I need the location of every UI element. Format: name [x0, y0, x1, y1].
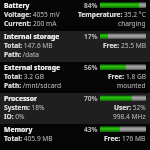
staticText: mounted: [117, 81, 146, 90]
staticText: 43%: [84, 125, 98, 134]
staticText: Battery: [4, 1, 30, 10]
staticText: Path: /data: [4, 50, 40, 59]
staticText: Memory: [4, 125, 33, 134]
staticText: 56%: [84, 63, 98, 72]
button[interactable]: Internal storage: [0, 31, 150, 62]
staticText: Processor: [4, 94, 38, 103]
staticText: External storage: [4, 63, 60, 72]
staticText: Current: 200 mA: [4, 19, 57, 28]
staticText: Free: 25.5 MB: [103, 41, 146, 50]
staticText: Total: 3.2 GB: [4, 72, 44, 81]
staticText: User: 52%: [114, 103, 146, 112]
staticText: Voltage: 4055 mV: [4, 10, 60, 19]
staticText: 70%: [84, 94, 98, 103]
staticText: Total: 405.9 MB: [4, 134, 53, 143]
staticText: 17%: [84, 32, 98, 41]
button[interactable]: Processor: [0, 93, 150, 124]
button[interactable]: Memory: [0, 124, 150, 150]
staticText: Free: 1.8 GB: [108, 72, 146, 81]
staticText: charging: [118, 19, 146, 28]
staticText: Temperature: 35.2 °C: [78, 10, 146, 19]
staticText: Total: 147.6 MB: [4, 41, 53, 50]
staticText: IO: 0%: [4, 112, 25, 121]
button[interactable]: Battery: [0, 0, 150, 31]
staticText: Internal storage: [4, 32, 60, 41]
staticText: 998.4 MHz: [113, 112, 146, 121]
staticText: Free: 176 MB: [104, 134, 146, 143]
staticText: Path: /mnt/sdcard: [4, 81, 62, 90]
staticText: 84%: [84, 1, 98, 10]
button[interactable]: External storage: [0, 62, 150, 93]
staticText: System: 18%: [4, 103, 45, 112]
